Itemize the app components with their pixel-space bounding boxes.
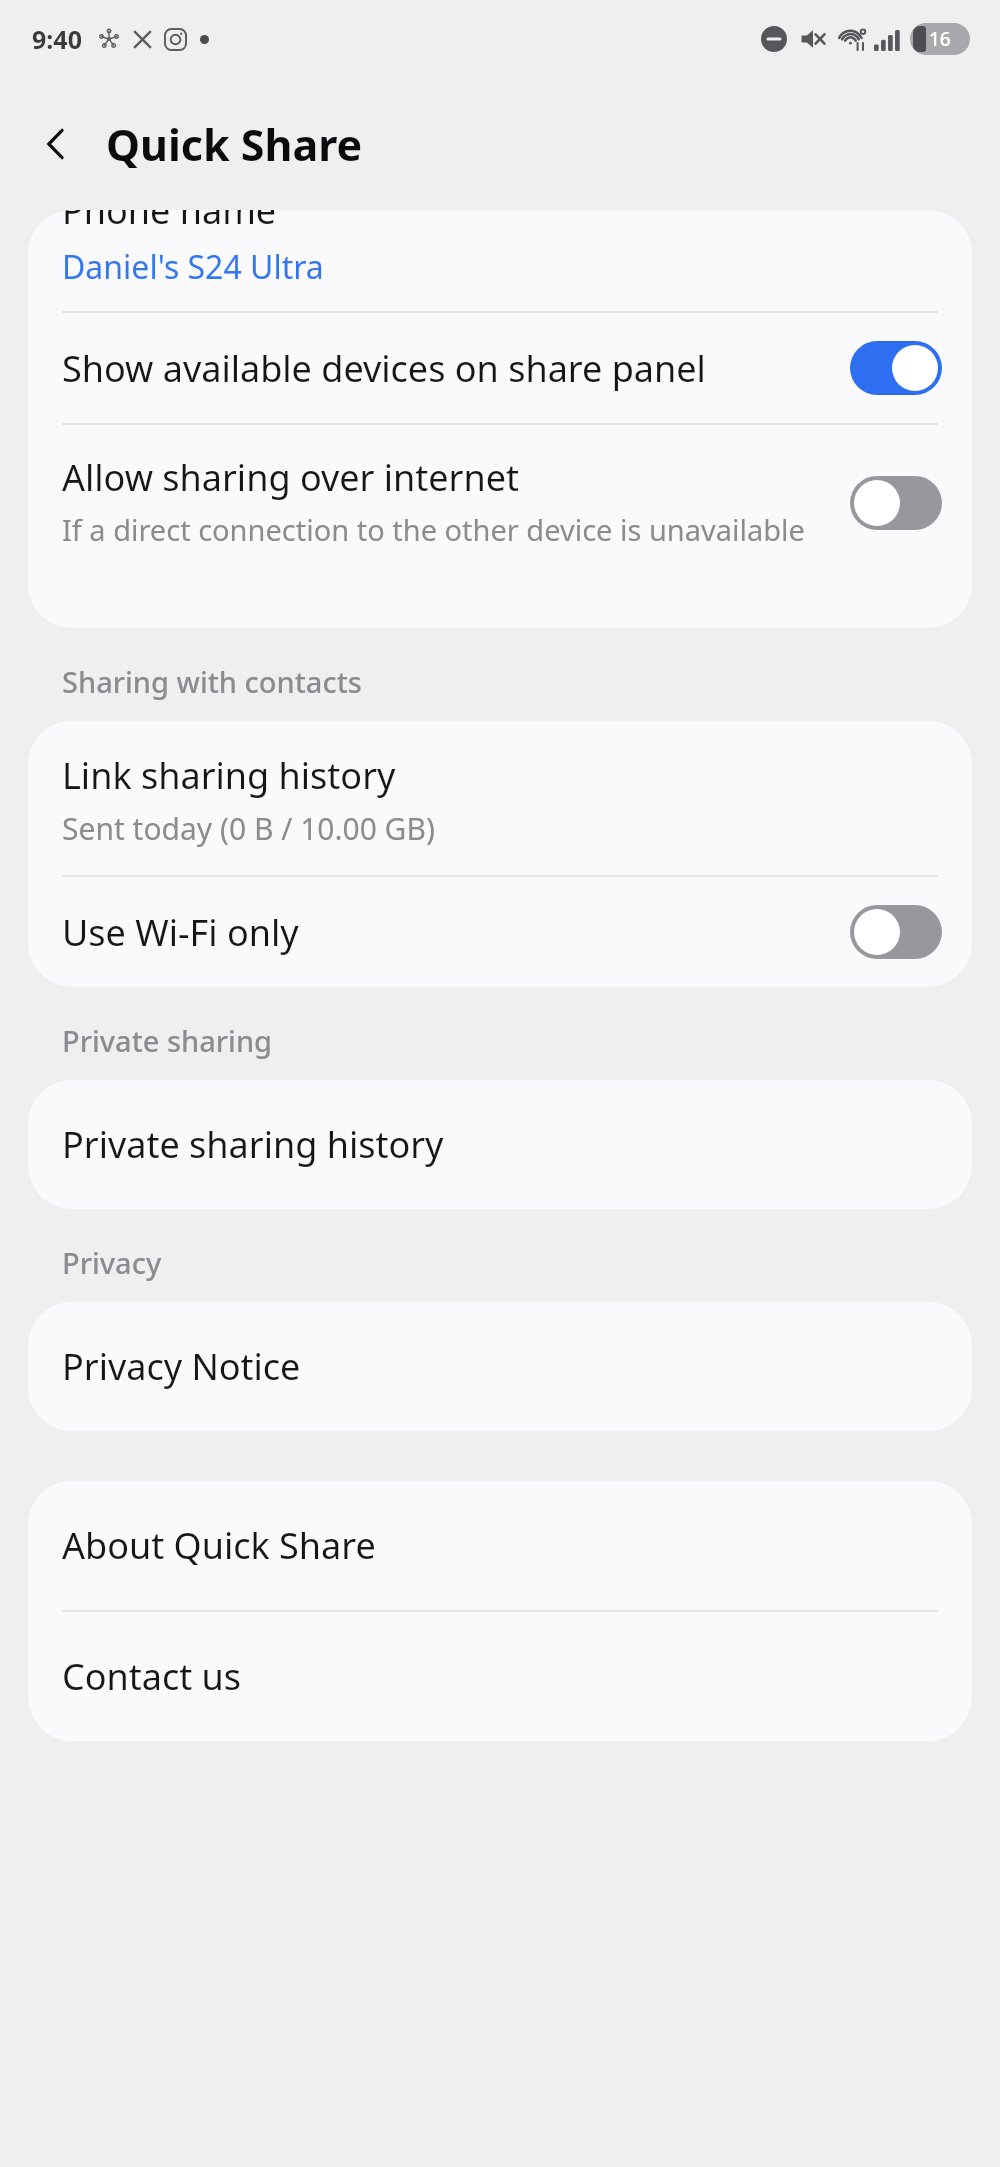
staticText: Quick Share <box>106 115 363 174</box>
staticText: Private sharing <box>62 1021 273 1060</box>
staticText: Allow sharing over internet <box>62 453 520 502</box>
button[interactable]: Link sharing history <box>28 721 972 875</box>
staticText: About Quick Share <box>62 1521 376 1570</box>
staticText: Phone name <box>62 210 277 235</box>
staticText: Contact us <box>62 1652 242 1701</box>
staticText: Show available devices on share panel <box>62 344 706 393</box>
staticText: Sent today (0 B / 10.00 GB) <box>62 808 435 849</box>
button[interactable]: Switch off <box>850 476 942 530</box>
button[interactable]: Show available devices on share panel <box>28 313 972 423</box>
button[interactable]: Switch off <box>850 905 942 959</box>
button[interactable]: About Quick Share <box>28 1481 972 1610</box>
staticText: Privacy Notice <box>62 1342 301 1391</box>
staticText: Daniel's S24 Ultra <box>62 245 324 289</box>
staticText: Link sharing history <box>62 751 396 800</box>
staticText: Use Wi-Fi only <box>62 908 299 957</box>
staticText: 16 <box>929 26 951 52</box>
button[interactable]: Switch on <box>850 341 942 395</box>
button[interactable]: Phone name <box>28 210 972 311</box>
button[interactable]: Back <box>26 114 86 174</box>
button[interactable]: Contact us <box>28 1612 972 1741</box>
button[interactable]: Privacy Notice <box>28 1302 972 1431</box>
staticText: Privacy <box>62 1243 162 1282</box>
staticText: Sharing with contacts <box>62 662 362 701</box>
button[interactable]: Use Wi-Fi only <box>28 877 972 987</box>
staticText: If a direct connection to the other devi… <box>62 510 826 552</box>
staticText: 9:40 <box>32 22 82 56</box>
staticText: Private sharing history <box>62 1120 444 1169</box>
button[interactable]: Allow sharing over internet <box>28 425 972 580</box>
button[interactable]: Private sharing history <box>28 1080 972 1209</box>
